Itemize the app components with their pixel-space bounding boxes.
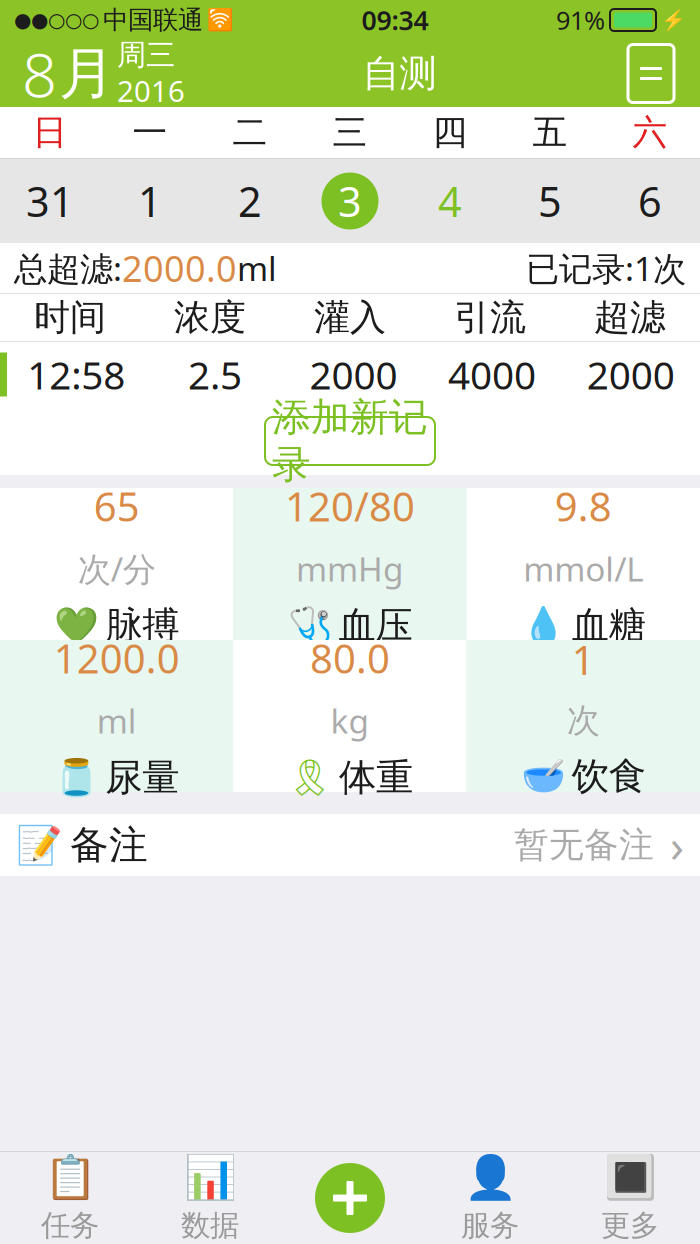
staticText: 添加新记录 bbox=[272, 393, 428, 488]
staticText: 💧 bbox=[521, 605, 566, 646]
staticText: ml bbox=[237, 246, 277, 290]
staticText: 引流 bbox=[454, 295, 526, 340]
staticText: 🔳 bbox=[603, 1153, 656, 1201]
button[interactable]: 1200.0 bbox=[0, 640, 233, 792]
staticText: 四 bbox=[432, 111, 467, 154]
staticText: 灌入 bbox=[314, 295, 386, 340]
staticText: 五 bbox=[532, 111, 567, 154]
staticText: 2 bbox=[238, 174, 262, 228]
staticText: 4 bbox=[438, 174, 462, 228]
staticText: 2.5 bbox=[188, 349, 242, 400]
staticText: 3 bbox=[338, 174, 362, 228]
staticText: 2016 bbox=[117, 71, 185, 110]
staticText: 数据 bbox=[181, 1207, 239, 1243]
button[interactable]: 120/80 bbox=[233, 488, 467, 640]
staticText: 65 bbox=[94, 479, 140, 532]
button[interactable]: 80.0 bbox=[233, 640, 467, 792]
staticText: 中国联通 bbox=[103, 4, 203, 35]
staticText: 备注 bbox=[70, 821, 148, 869]
staticText: 9.8 bbox=[555, 479, 612, 532]
staticText: 暂无备注 bbox=[514, 824, 654, 866]
staticText: 月 bbox=[59, 39, 115, 108]
staticText: 📊 bbox=[183, 1153, 236, 1201]
staticText: 5 bbox=[538, 174, 562, 228]
staticText: 📋 bbox=[43, 1153, 96, 1201]
staticText: 已记录:1次 bbox=[526, 246, 686, 290]
button[interactable]: 添加 bbox=[280, 1152, 420, 1244]
staticText: › bbox=[670, 815, 684, 875]
button[interactable]: 6 bbox=[600, 159, 700, 243]
staticText: 💚 bbox=[54, 605, 99, 646]
staticText: 超滤 bbox=[594, 295, 666, 340]
button[interactable]: 2 bbox=[200, 159, 300, 243]
staticText: ml bbox=[97, 698, 137, 743]
button[interactable]: 3 bbox=[300, 159, 400, 243]
staticText: kg bbox=[330, 698, 369, 743]
button[interactable]: 添加新记录 bbox=[265, 417, 435, 465]
button[interactable]: 📊 bbox=[140, 1152, 280, 1244]
button[interactable]: 65 bbox=[0, 488, 233, 640]
button[interactable]: 📋 bbox=[0, 1152, 140, 1244]
button[interactable]: 📝 bbox=[0, 814, 700, 876]
staticText: 浓度 bbox=[174, 295, 246, 340]
staticText: 91% bbox=[556, 3, 605, 37]
button[interactable]: 1 bbox=[467, 640, 700, 792]
staticText: mmHg bbox=[296, 546, 404, 591]
staticText: 体重 bbox=[339, 755, 413, 801]
staticText: 4000 bbox=[448, 349, 536, 400]
staticText: 🫙 bbox=[54, 757, 99, 798]
button[interactable]: 9.8 bbox=[467, 488, 700, 640]
staticText: 6 bbox=[638, 174, 662, 228]
staticText: 脉搏 bbox=[105, 603, 179, 649]
staticText: 👤 bbox=[463, 1153, 516, 1201]
staticText: 2000 bbox=[587, 349, 675, 400]
staticText: 更多 bbox=[601, 1207, 659, 1243]
button[interactable]: 12:58 bbox=[0, 342, 700, 407]
staticText: 次 bbox=[567, 700, 600, 741]
staticText: 12:58 bbox=[27, 349, 125, 400]
staticText: 🥣 bbox=[521, 755, 566, 797]
staticText: ●●○○○ bbox=[14, 9, 99, 31]
staticText: 🛜 bbox=[207, 8, 234, 32]
staticText: 📝 bbox=[16, 824, 62, 866]
staticText: 六 bbox=[632, 111, 667, 154]
staticText: 1200.0 bbox=[54, 631, 180, 684]
staticText: 任务 bbox=[41, 1207, 99, 1243]
staticText: ⚡ bbox=[661, 9, 686, 31]
staticText: 8 bbox=[22, 33, 57, 114]
staticText: 1 bbox=[138, 174, 162, 228]
button[interactable]: 1 bbox=[100, 159, 200, 243]
staticText: 三 bbox=[332, 111, 367, 154]
staticText: 日 bbox=[32, 111, 67, 154]
staticText: 09:34 bbox=[361, 2, 428, 38]
staticText: 80.0 bbox=[310, 631, 390, 684]
staticText: 1 bbox=[572, 633, 595, 686]
staticText: mmol/L bbox=[523, 546, 643, 591]
staticText: 2000.0 bbox=[122, 244, 237, 292]
staticText: 血糖 bbox=[572, 603, 646, 649]
staticText: 总超滤: bbox=[14, 246, 122, 290]
staticText: 一 bbox=[132, 111, 167, 154]
staticText: 二 bbox=[232, 111, 267, 154]
button[interactable]: 👤 bbox=[420, 1152, 560, 1244]
button[interactable]: 记录报告 bbox=[614, 36, 688, 110]
button[interactable]: 5 bbox=[500, 159, 600, 243]
staticText: 120/80 bbox=[285, 479, 415, 532]
staticText: 自测 bbox=[362, 51, 436, 96]
staticText: 🎗 bbox=[287, 757, 333, 798]
staticText: 血压 bbox=[338, 603, 412, 649]
button[interactable]: 🔳 bbox=[560, 1152, 700, 1244]
button[interactable]: 31 bbox=[0, 159, 100, 243]
staticText: 周三 bbox=[117, 37, 175, 73]
staticText: 🩺 bbox=[287, 605, 332, 646]
staticText: 2000 bbox=[309, 349, 397, 400]
staticText: 饮食 bbox=[572, 753, 646, 799]
button[interactable]: 4 bbox=[400, 159, 500, 243]
staticText: 31 bbox=[26, 174, 74, 228]
staticText: 次/分 bbox=[78, 546, 156, 591]
button[interactable]: 8 bbox=[22, 33, 185, 114]
staticText: 服务 bbox=[461, 1207, 519, 1243]
staticText: 尿量 bbox=[105, 755, 179, 801]
staticText: 时间 bbox=[34, 295, 106, 340]
